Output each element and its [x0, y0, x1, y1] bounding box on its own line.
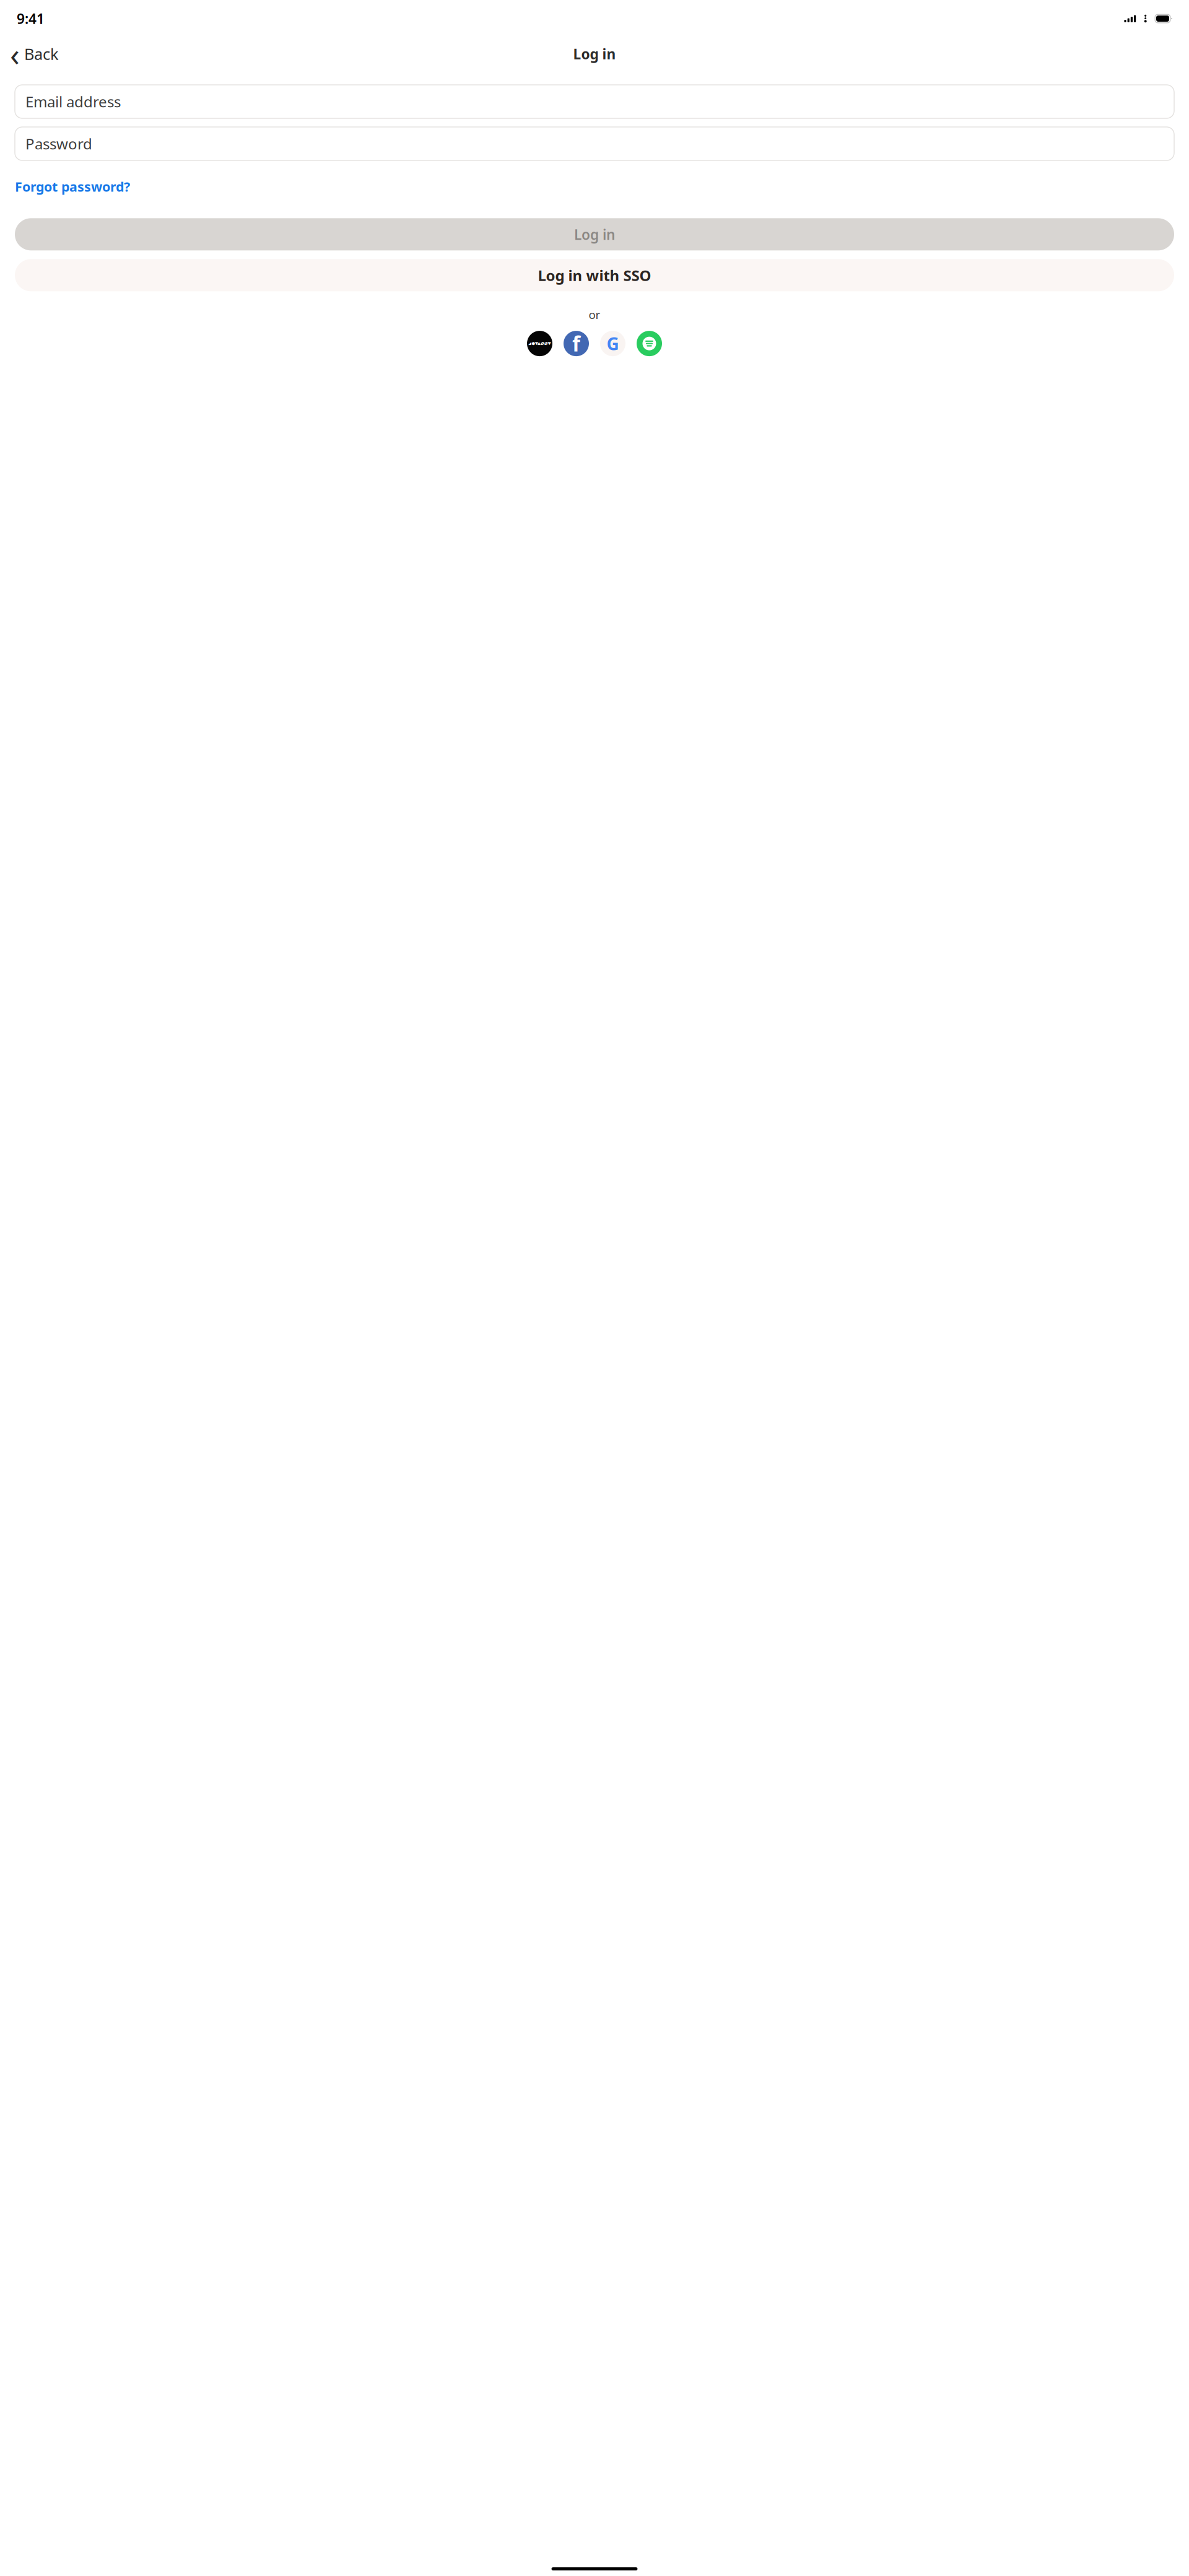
staticText: Log in with SSO — [538, 265, 651, 285]
staticText: Back — [24, 43, 59, 64]
staticText: Log in — [574, 225, 615, 244]
button[interactable]: Forgot password? — [15, 174, 130, 199]
staticText: G — [607, 332, 619, 355]
button[interactable]: Continue with Apple — [527, 331, 552, 356]
button[interactable]: Continue with Spotify — [637, 331, 662, 356]
button[interactable]: Email address — [15, 85, 1174, 118]
staticText: Password — [25, 134, 92, 154]
staticText: ‹ — [10, 33, 20, 75]
button[interactable]: Log in with SSO — [15, 259, 1174, 291]
button[interactable]: Continue with Facebook — [564, 331, 589, 356]
staticText: 9:41 — [17, 9, 45, 28]
staticText: Forgot password? — [15, 178, 130, 195]
staticText: Email address — [25, 92, 121, 111]
button[interactable]: Log in — [15, 218, 1174, 250]
staticText: f — [572, 330, 580, 357]
staticText:  — [528, 332, 551, 355]
staticText: Log in — [573, 45, 616, 63]
button[interactable]: ‹ — [7, 29, 61, 78]
staticText: or — [589, 307, 600, 322]
button[interactable]: Password — [15, 127, 1174, 160]
button[interactable]: Continue with Google — [600, 331, 625, 356]
